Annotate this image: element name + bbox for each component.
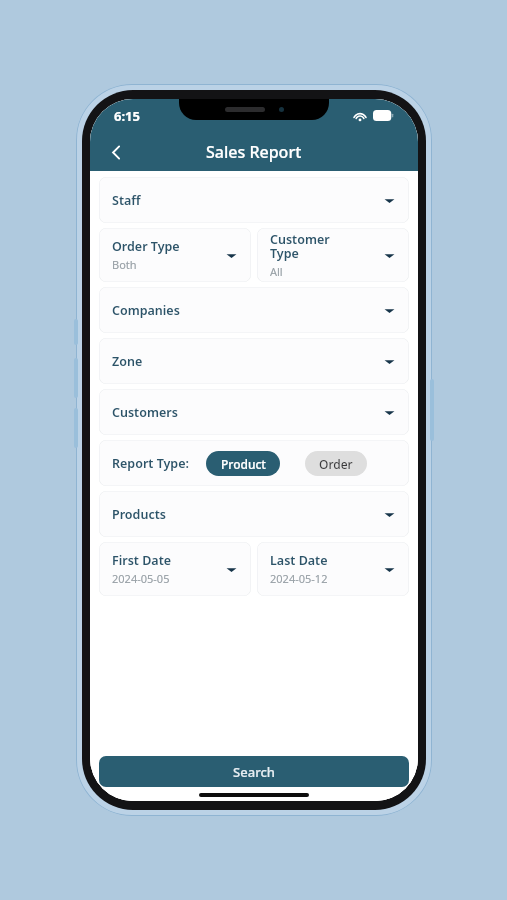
button[interactable]: Product xyxy=(206,451,280,476)
button[interactable]: Companies xyxy=(99,287,409,333)
staticText: Order xyxy=(319,456,353,472)
staticText: Last Date xyxy=(270,552,328,569)
button[interactable]: Products xyxy=(99,491,409,537)
staticText: Zone xyxy=(112,353,143,370)
staticText: 6:15 xyxy=(114,107,140,125)
button[interactable]: Customer Type xyxy=(257,228,409,282)
staticText: Both xyxy=(112,257,137,272)
button[interactable]: First Date xyxy=(99,542,251,596)
staticText: 2024-05-12 xyxy=(270,571,328,586)
staticText: Customers xyxy=(112,404,178,421)
staticText: Sales Report xyxy=(206,141,302,163)
button[interactable]: Staff xyxy=(99,177,409,223)
staticText: Staff xyxy=(112,192,141,209)
staticText: Products xyxy=(112,506,166,523)
staticText: 2024-05-05 xyxy=(112,571,170,586)
button[interactable]: Order Type xyxy=(99,228,251,282)
staticText: Order Type xyxy=(112,238,180,255)
staticText: Search xyxy=(233,763,275,781)
button[interactable]: Order xyxy=(305,451,367,476)
button[interactable]: Last Date xyxy=(257,542,409,596)
staticText: All xyxy=(270,264,283,279)
button[interactable]: Back xyxy=(98,134,134,170)
button[interactable]: Customers xyxy=(99,389,409,435)
staticText: First Date xyxy=(112,552,172,569)
staticText: Companies xyxy=(112,302,180,319)
staticText: Report Type: xyxy=(112,455,189,472)
button[interactable]: Zone xyxy=(99,338,409,384)
staticText: Product xyxy=(221,456,266,472)
button[interactable]: Search xyxy=(99,756,409,787)
staticText: Customer Type xyxy=(270,231,330,262)
